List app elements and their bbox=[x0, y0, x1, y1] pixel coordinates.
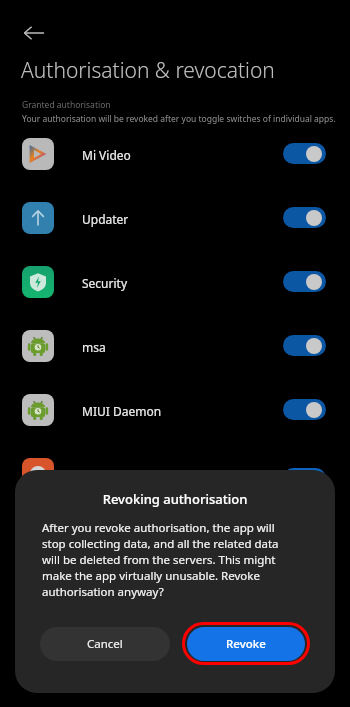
staticText: Updater bbox=[82, 211, 129, 227]
button[interactable]: Toggle msa bbox=[283, 335, 326, 356]
staticText: Revoking authorisation bbox=[15, 490, 335, 508]
staticText: MIUI Daemon bbox=[82, 403, 162, 419]
button[interactable]: Toggle Security bbox=[283, 271, 326, 292]
button[interactable]: Revoke bbox=[182, 622, 310, 665]
staticText: Mi Video bbox=[82, 147, 131, 163]
button[interactable]: Mi Video bbox=[0, 122, 350, 186]
staticText: Granted authorisation bbox=[22, 99, 111, 111]
button[interactable] bbox=[283, 468, 326, 489]
button[interactable]: Toggle MIUI Daemon bbox=[283, 399, 326, 420]
button[interactable]: Cancel bbox=[40, 627, 170, 661]
staticText: After you revoke authorisation, the app … bbox=[42, 520, 287, 600]
staticText: Revoke bbox=[226, 636, 266, 652]
button[interactable]: Security bbox=[0, 250, 350, 314]
staticText: msa bbox=[82, 339, 106, 355]
staticText: Security bbox=[82, 275, 128, 291]
button[interactable]: Toggle Mi Video bbox=[283, 143, 326, 164]
button[interactable]: Updater bbox=[0, 186, 350, 250]
button[interactable]: Back bbox=[12, 11, 56, 55]
button[interactable]: msa bbox=[0, 314, 350, 378]
staticText: Cancel bbox=[87, 636, 123, 652]
button[interactable]: MIUI Daemon bbox=[0, 378, 350, 442]
staticText: Your authorisation will be revoked after… bbox=[22, 113, 336, 125]
staticText: Authorisation & revocation bbox=[21, 56, 275, 85]
button[interactable]: Toggle Updater bbox=[283, 207, 326, 228]
button[interactable] bbox=[22, 458, 54, 490]
